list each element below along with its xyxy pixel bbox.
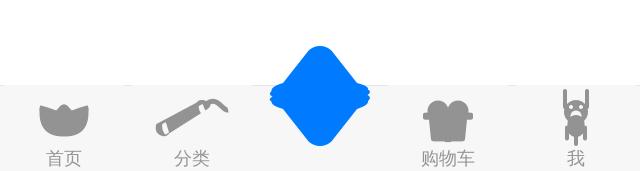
button[interactable]: 购物车 xyxy=(388,85,508,171)
button[interactable]: 分类 xyxy=(132,85,252,171)
staticText: 我 xyxy=(567,147,585,170)
button[interactable]: 首页 xyxy=(4,85,124,171)
button[interactable]: 发布 xyxy=(270,46,370,146)
staticText: 首页 xyxy=(46,147,82,170)
staticText: 购物车 xyxy=(421,147,475,170)
button[interactable]: 我 xyxy=(516,85,636,171)
staticText: 分类 xyxy=(174,147,210,170)
